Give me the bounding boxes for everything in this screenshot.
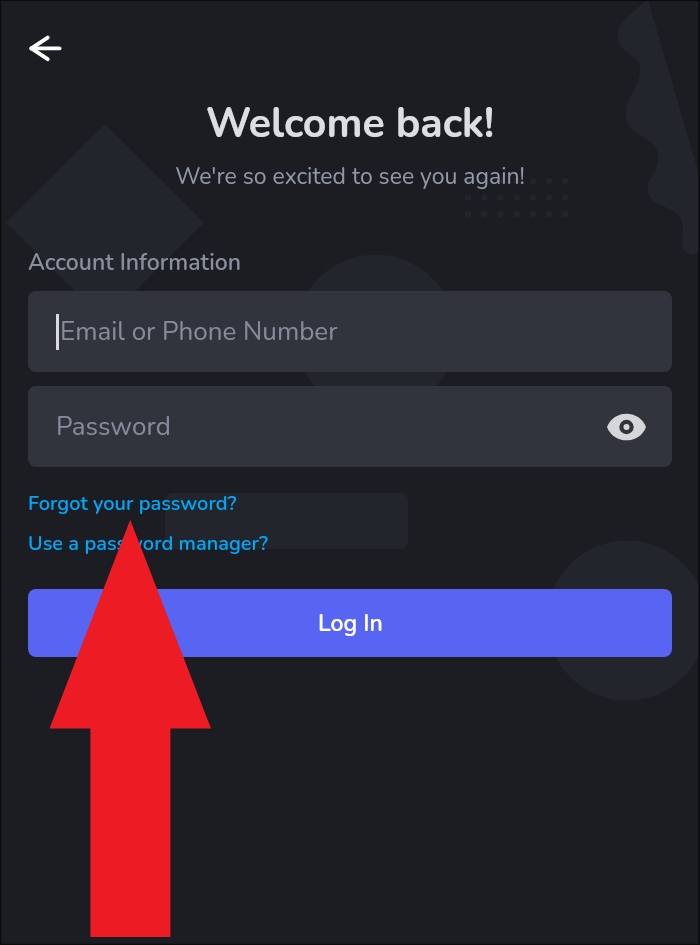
button[interactable]: Use a password manager? <box>28 530 268 557</box>
staticText: Account Information <box>28 247 241 278</box>
button[interactable]: Back <box>19 24 71 76</box>
button[interactable]: Email or Phone Number <box>28 291 672 372</box>
staticText: Password <box>56 409 171 444</box>
button[interactable]: Forgot your password? <box>28 490 237 517</box>
staticText: Email or Phone Number <box>60 314 338 349</box>
staticText: We're so excited to see you again! <box>0 161 700 192</box>
button[interactable]: Password <box>28 386 672 467</box>
staticText: Welcome back! <box>0 96 700 152</box>
staticText: Log In <box>318 608 383 639</box>
staticText: Use a password manager? <box>28 530 268 557</box>
button[interactable]: Log In <box>28 589 672 657</box>
staticText: Forgot your password? <box>28 490 237 517</box>
button[interactable]: Show password <box>601 402 651 452</box>
